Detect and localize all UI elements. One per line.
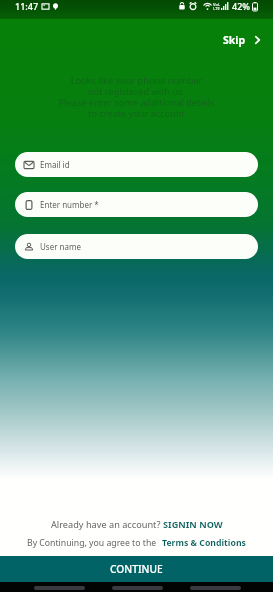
- staticText: By Continuing, you agree to the: [27, 537, 159, 549]
- staticText: Already have an account?: [51, 518, 163, 531]
- button[interactable]: Skip: [219, 29, 265, 51]
- staticText: Enter number *: [40, 199, 99, 210]
- button[interactable]: Home: [112, 586, 163, 590]
- button[interactable]: SIGNIN NOW: [163, 518, 223, 531]
- button[interactable]: Terms & Conditions: [162, 537, 246, 549]
- button[interactable]: CONTINUE: [0, 556, 273, 582]
- staticText: User name: [40, 241, 81, 252]
- staticText: 11:47: [15, 0, 39, 12]
- staticText: 42%: [232, 0, 250, 12]
- staticText: Email id: [40, 159, 70, 170]
- button[interactable]: Email id: [15, 152, 258, 177]
- button[interactable]: Back: [190, 586, 241, 590]
- staticText: Skip: [223, 33, 246, 47]
- button[interactable]: Enter number *: [15, 192, 258, 217]
- staticText: Looks like your phone number not registe…: [0, 74, 273, 120]
- staticText: CONTINUE: [110, 562, 163, 576]
- button[interactable]: User name: [15, 234, 258, 259]
- staticText: VoL LTE: [213, 2, 220, 11]
- button[interactable]: Recents: [34, 586, 85, 590]
- staticText: Terms & Conditions: [162, 537, 246, 549]
- staticText: SIGNIN NOW: [163, 518, 223, 531]
